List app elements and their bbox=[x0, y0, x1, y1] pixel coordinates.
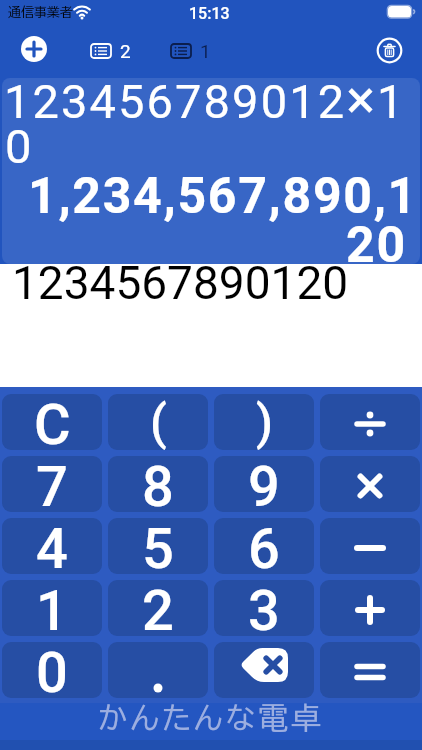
staticText: 1,234,567,890,1 bbox=[28, 167, 418, 226]
staticText: 1234567890120 bbox=[12, 256, 349, 310]
button[interactable]: 1 bbox=[2, 580, 102, 636]
staticText: 0 bbox=[5, 119, 34, 174]
staticText: 123456789012×1 bbox=[4, 78, 406, 131]
staticText: 1 bbox=[36, 580, 68, 634]
button[interactable] bbox=[21, 36, 47, 62]
staticText: 1 bbox=[200, 40, 211, 62]
button[interactable]: 3 bbox=[214, 580, 314, 636]
button[interactable]: 5 bbox=[108, 518, 208, 574]
staticText: 2 bbox=[120, 40, 131, 62]
staticText: 2 bbox=[142, 580, 174, 634]
staticText: C bbox=[34, 394, 71, 448]
button[interactable]: 4 bbox=[2, 518, 102, 574]
button[interactable]: C bbox=[2, 394, 102, 450]
button[interactable] bbox=[108, 642, 208, 698]
button[interactable] bbox=[214, 642, 314, 698]
button[interactable]: 0 bbox=[2, 642, 102, 698]
staticText: ) bbox=[256, 394, 273, 450]
button[interactable] bbox=[320, 580, 420, 636]
button[interactable] bbox=[320, 394, 420, 450]
staticText: 15:13 bbox=[189, 4, 230, 23]
button[interactable] bbox=[320, 456, 420, 512]
staticText: 3 bbox=[248, 580, 280, 634]
staticText: 4 bbox=[36, 518, 68, 572]
button[interactable] bbox=[376, 37, 403, 64]
staticText: 7 bbox=[36, 456, 68, 510]
button[interactable]: 2 bbox=[108, 580, 208, 636]
staticText: 通信事業者 bbox=[8, 6, 73, 19]
button[interactable] bbox=[320, 642, 420, 698]
button[interactable]: かんたんな電卓 bbox=[0, 703, 422, 740]
staticText: ( bbox=[150, 394, 167, 450]
staticText: 9 bbox=[248, 456, 280, 510]
button[interactable]: 1 bbox=[170, 40, 211, 62]
button[interactable]: 8 bbox=[108, 456, 208, 512]
button[interactable]: 2 bbox=[90, 40, 131, 62]
staticText: 6 bbox=[248, 518, 280, 572]
button[interactable] bbox=[320, 518, 420, 574]
staticText: かんたんな電卓 bbox=[98, 703, 324, 733]
button[interactable]: ) bbox=[214, 394, 314, 450]
staticText: 5 bbox=[142, 518, 174, 572]
button[interactable]: ( bbox=[108, 394, 208, 450]
staticText: 0 bbox=[36, 642, 68, 696]
button[interactable]: 9 bbox=[214, 456, 314, 512]
button[interactable]: 6 bbox=[214, 518, 314, 574]
button[interactable]: 7 bbox=[2, 456, 102, 512]
staticText: 20 bbox=[346, 216, 407, 264]
staticText: 8 bbox=[142, 456, 174, 510]
